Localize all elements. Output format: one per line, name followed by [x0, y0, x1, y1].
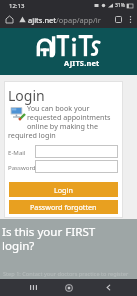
button[interactable]: Back	[100, 279, 117, 296]
button[interactable]: Recent apps	[25, 279, 42, 296]
staticText: ajits.net	[28, 15, 56, 25]
button[interactable]: Tabs	[112, 13, 125, 26]
staticText: Password	[8, 163, 36, 171]
staticText: Step 1: Contact your doctors practice to…	[3, 270, 129, 278]
staticText: Login	[8, 86, 45, 105]
button[interactable]: Password forgotten	[9, 200, 118, 214]
staticText: required login	[8, 130, 56, 140]
staticText: /opap/app/ir	[56, 15, 101, 25]
button[interactable]: Login	[9, 182, 118, 197]
staticText: Is this your FIRST login?	[2, 224, 96, 253]
staticText: You can book your requested appointments…	[27, 103, 111, 131]
staticText: Login	[54, 185, 73, 195]
button[interactable]: More options	[125, 14, 136, 25]
staticText: 12:13	[9, 2, 25, 10]
staticText: Password forgotten	[30, 202, 97, 212]
button[interactable]: Home	[60, 279, 77, 296]
staticText: E-Mail	[8, 148, 26, 156]
button[interactable]: ajits.net	[28, 15, 112, 25]
staticText: AJITS.net	[64, 58, 100, 68]
staticText: 31%	[115, 2, 125, 9]
button[interactable]: Home	[3, 13, 16, 26]
